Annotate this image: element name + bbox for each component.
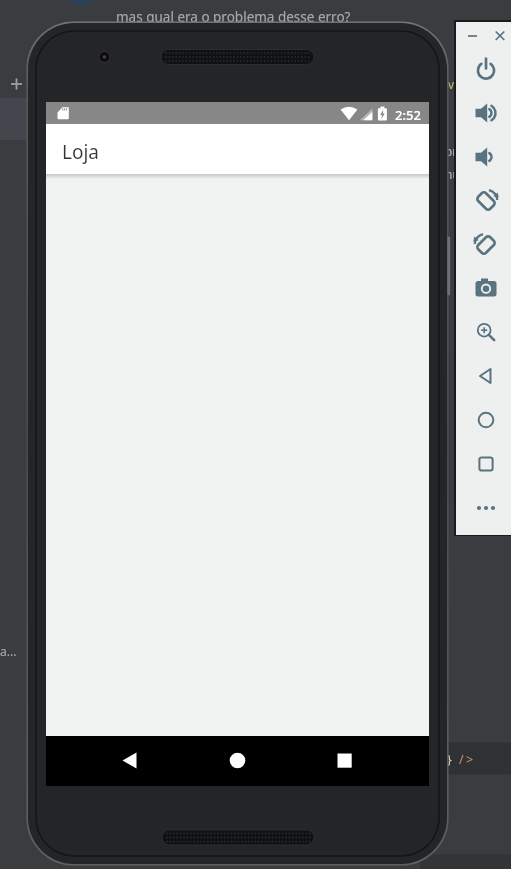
button[interactable] xyxy=(466,181,506,221)
button[interactable] xyxy=(466,400,506,440)
staticText: Loja xyxy=(62,139,100,165)
staticText: or xyxy=(445,143,458,159)
button[interactable] xyxy=(328,744,361,777)
staticText: mas qual era o problema desse erro? xyxy=(116,8,351,26)
staticText: > xyxy=(466,751,474,768)
staticText: nu xyxy=(445,166,460,182)
button[interactable] xyxy=(466,93,506,133)
staticText: } xyxy=(447,751,452,768)
button[interactable] xyxy=(466,488,506,528)
button[interactable] xyxy=(466,49,506,89)
button[interactable] xyxy=(113,744,146,777)
staticText: vi xyxy=(448,76,458,92)
staticText: / xyxy=(459,751,464,768)
button[interactable] xyxy=(466,268,506,308)
button[interactable] xyxy=(466,444,506,484)
button[interactable] xyxy=(466,356,506,396)
button[interactable] xyxy=(492,28,508,44)
button[interactable] xyxy=(466,137,506,177)
staticText: a... xyxy=(0,643,17,659)
staticText: 2:52 xyxy=(395,106,421,124)
button[interactable] xyxy=(466,225,506,265)
button[interactable] xyxy=(464,28,480,44)
button[interactable] xyxy=(466,312,506,352)
button[interactable] xyxy=(221,744,254,777)
